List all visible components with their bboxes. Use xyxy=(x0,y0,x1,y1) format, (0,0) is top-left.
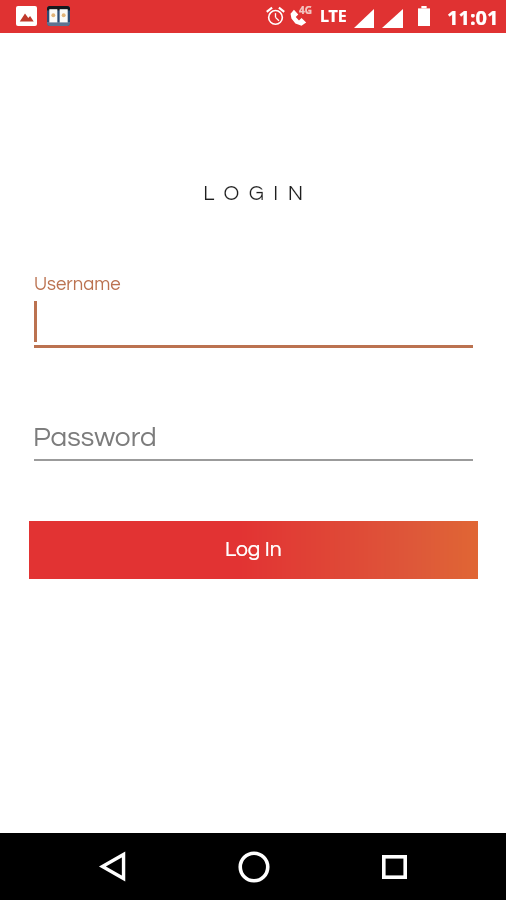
button[interactable]: Back xyxy=(85,833,141,900)
staticText: LTE xyxy=(320,5,347,27)
button[interactable]: Home xyxy=(226,833,282,900)
staticText: 4G xyxy=(299,3,312,17)
button[interactable]: Password field xyxy=(34,419,473,461)
staticText: Log In xyxy=(225,539,282,561)
staticText: Username xyxy=(34,275,121,294)
button[interactable]: Log In xyxy=(29,521,478,579)
staticText: LOGIN xyxy=(5,183,506,205)
staticText: 11:01 xyxy=(447,4,499,31)
button[interactable]: Book notification xyxy=(47,6,70,26)
button[interactable]: Recents xyxy=(366,833,422,900)
button[interactable]: Screenshot notification xyxy=(16,6,37,26)
staticText: Password xyxy=(33,423,157,452)
button[interactable]: Username field xyxy=(34,271,473,348)
